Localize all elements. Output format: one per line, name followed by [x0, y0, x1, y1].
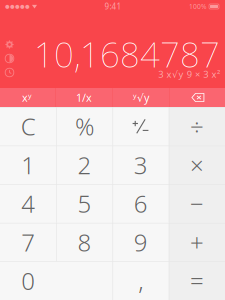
button[interactable]: ÷ [169, 107, 225, 146]
staticText: − [190, 188, 204, 219]
staticText: 3 [134, 149, 148, 181]
button[interactable]: 7 [0, 223, 56, 261]
button[interactable]: 6 [112, 184, 169, 223]
button[interactable]: 9 [112, 223, 169, 261]
staticText: 10,1684787 [34, 31, 220, 77]
button[interactable]: x to the power of y [0, 88, 55, 107]
staticText: 0 [21, 265, 35, 297]
staticText: 3 x√y 9 × 3 x² [158, 68, 220, 80]
staticText: 4 [21, 188, 35, 219]
button[interactable]: 4 [0, 184, 56, 223]
button[interactable]: 2 [56, 146, 112, 184]
staticText: ÷ [190, 110, 204, 142]
staticText: 7 [21, 226, 35, 258]
staticText: + [190, 226, 204, 258]
staticText: 2 [77, 149, 91, 181]
button[interactable]: = [169, 261, 225, 300]
button[interactable]: + [169, 223, 225, 261]
button[interactable]: History [4, 67, 15, 78]
staticText: % [75, 110, 94, 142]
staticText: ●●●●● [5, 3, 30, 10]
button[interactable]: C [0, 107, 56, 146]
staticText: × [190, 149, 204, 181]
staticText: = [190, 265, 204, 297]
button[interactable]: 1 [0, 146, 56, 184]
staticText: 1 [21, 149, 35, 181]
button[interactable]: 3 [112, 146, 169, 184]
button[interactable]: y-th root of y [113, 88, 169, 107]
button[interactable]: × [169, 146, 225, 184]
button[interactable]: , [112, 261, 169, 300]
staticText: 1/x [76, 90, 92, 105]
staticText: ʸ√y [133, 90, 149, 105]
staticText: C [21, 110, 36, 142]
staticText: , [138, 265, 143, 297]
staticText: 9:41 [104, 1, 121, 12]
button[interactable]: Appearance [4, 53, 15, 64]
staticText: xʸ [22, 90, 32, 105]
button[interactable]: 5 [56, 184, 112, 223]
button[interactable]: one divided by x [56, 88, 112, 107]
button[interactable]: 0 [0, 261, 112, 300]
staticText: 5 [77, 188, 91, 219]
staticText: 9 [134, 226, 148, 258]
staticText: 6 [134, 188, 148, 219]
button[interactable]: % [56, 107, 112, 146]
button[interactable]: − [169, 184, 225, 223]
button[interactable]: Plus minus, toggle sign [112, 107, 169, 146]
button[interactable]: 8 [56, 223, 112, 261]
button[interactable]: Settings [4, 39, 15, 50]
staticText: 8 [77, 226, 91, 258]
staticText: 100% [189, 2, 207, 11]
button[interactable]: Delete [170, 88, 225, 107]
